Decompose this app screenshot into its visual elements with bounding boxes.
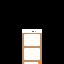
button[interactable]: Add bbox=[38, 61, 41, 64]
button[interactable] bbox=[24, 62, 40, 64]
button[interactable] bbox=[24, 48, 40, 60]
button[interactable] bbox=[24, 34, 40, 46]
